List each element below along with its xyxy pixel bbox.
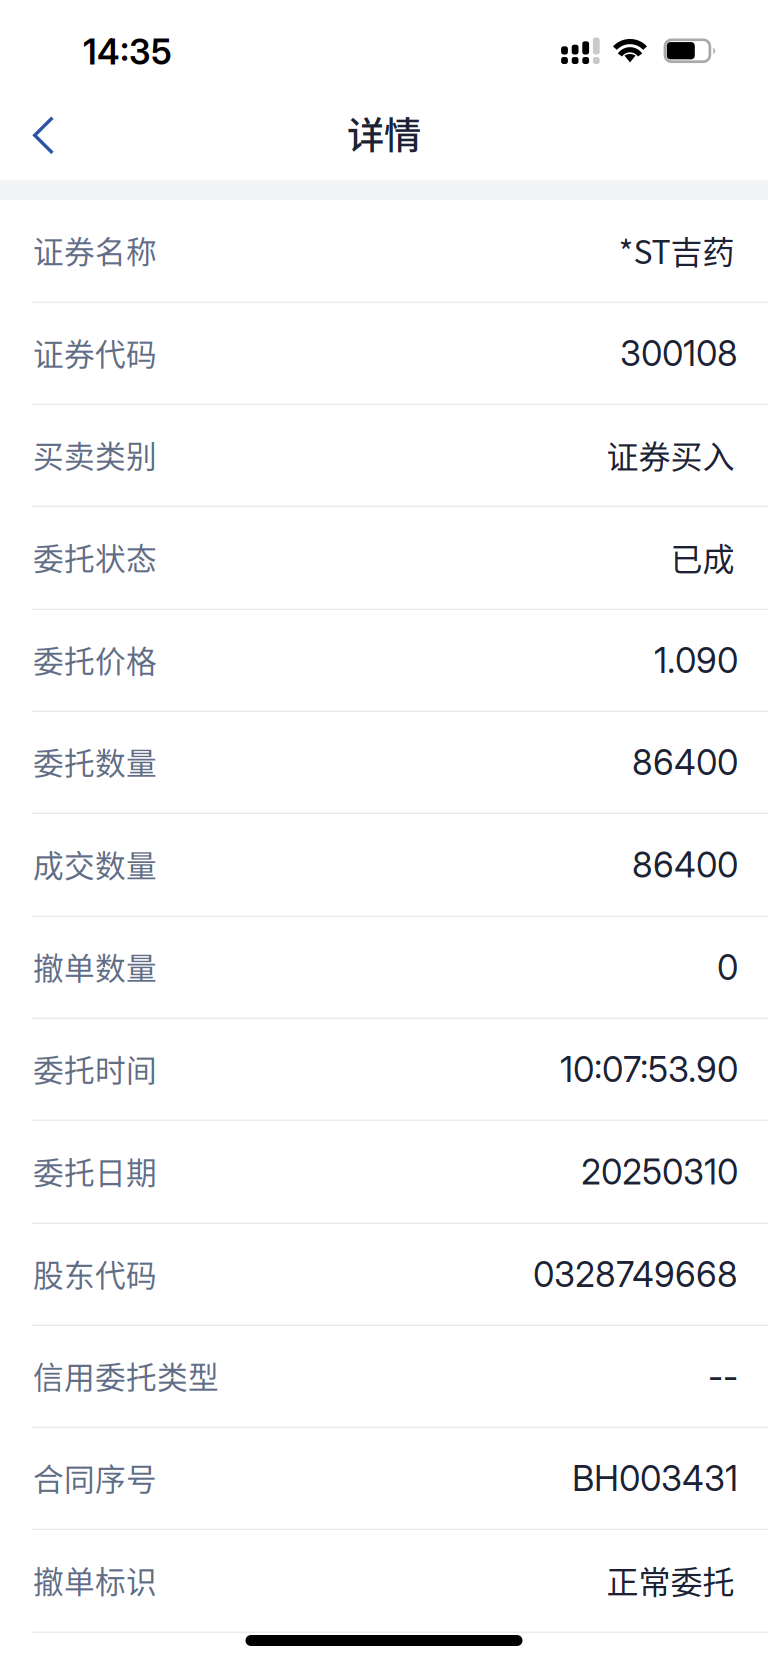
staticText: 详情 [347,106,421,160]
button[interactable]: 信用委托类型 [0,1326,768,1428]
staticText: 已成 [670,534,734,580]
button[interactable]: 委托价格 [0,610,768,712]
staticText: 买卖类别 [33,432,157,477]
staticText: 1.090 [654,639,738,681]
button[interactable]: 证券代码 [0,303,768,405]
staticText: 300108 [620,332,738,374]
staticText: 委托时间 [33,1046,157,1091]
button[interactable]: 成交数量 [0,814,768,917]
staticText: *ST吉药 [618,227,734,273]
button[interactable]: 合同序号 [0,1428,768,1530]
staticText: 20250310 [581,1151,738,1193]
staticText: 撤单标识 [33,1558,157,1602]
staticText: 委托数量 [33,739,157,784]
staticText: 证券代码 [33,330,157,375]
button[interactable]: 委托日期 [0,1121,768,1224]
staticText: 信用委托类型 [33,1353,219,1398]
staticText: 撤单数量 [33,944,157,989]
button[interactable]: 委托状态 [0,507,768,610]
staticText: 14:35 [83,31,172,73]
button[interactable]: 证券名称 [0,200,768,303]
staticText: BH003431 [572,1457,738,1499]
button[interactable]: Back [0,90,104,180]
button[interactable]: 委托数量 [0,712,768,814]
staticText: 成交数量 [33,842,157,886]
staticText: 委托日期 [33,1149,157,1193]
staticText: 86400 [632,741,738,783]
staticText: 10:07:53.90 [560,1048,738,1090]
button[interactable]: 买卖类别 [0,405,768,507]
button[interactable]: 撤单数量 [0,917,768,1019]
staticText: 股东代码 [33,1251,157,1296]
staticText: 委托价格 [33,637,157,682]
staticText: 合同序号 [33,1455,157,1500]
button[interactable]: 撤单标识 [0,1530,768,1633]
staticText: 86400 [632,844,738,886]
staticText: 委托状态 [33,535,157,579]
staticText: 0328749668 [533,1253,738,1295]
staticText: 正常委托 [606,1557,734,1603]
staticText: 证券名称 [33,228,157,272]
button[interactable]: 委托时间 [0,1019,768,1121]
button[interactable]: 股东代码 [0,1224,768,1326]
staticText: 证券买入 [606,431,734,478]
staticText: -- [708,1355,738,1397]
staticText: 0 [717,946,738,988]
